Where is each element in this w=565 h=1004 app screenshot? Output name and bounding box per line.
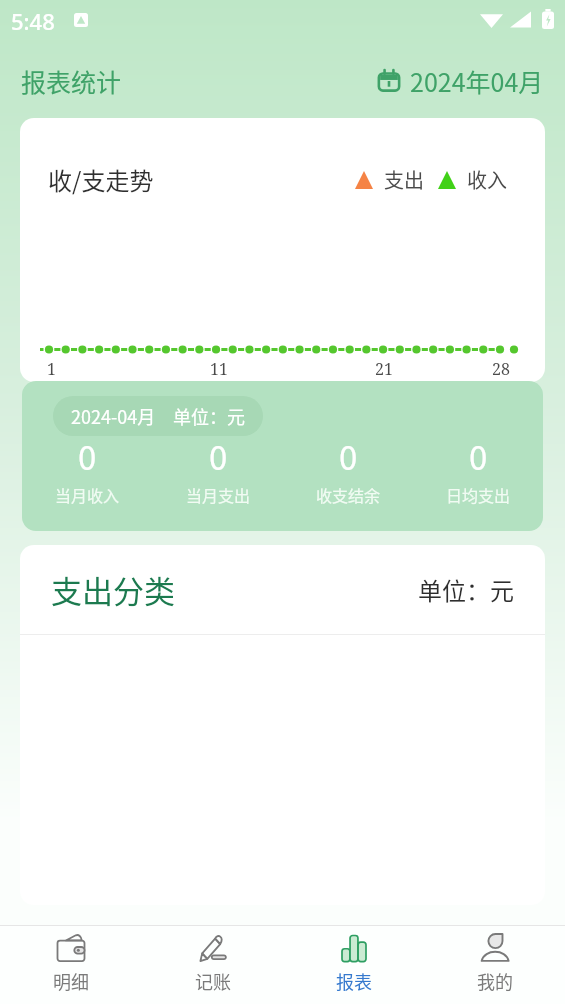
- button[interactable]: Select month: [376, 63, 544, 99]
- staticText: 单位：元: [418, 572, 514, 607]
- staticText: 明细: [53, 968, 89, 994]
- button[interactable]: 报表: [283, 926, 424, 999]
- staticText: 当月收入: [55, 483, 120, 506]
- staticText: 28: [492, 358, 510, 380]
- button[interactable]: 明细: [0, 926, 142, 999]
- staticText: 我的: [477, 968, 513, 994]
- staticText: 0: [339, 432, 358, 480]
- staticText: 0: [469, 432, 488, 480]
- staticText: 日均支出: [446, 483, 511, 506]
- staticText: 收/支走势: [48, 162, 154, 197]
- staticText: 记账: [195, 968, 231, 994]
- staticText: 11: [210, 358, 228, 380]
- other: Select month: [376, 68, 402, 94]
- staticText: 报表: [336, 968, 372, 994]
- staticText: 21: [375, 358, 393, 380]
- staticText: 支出: [384, 165, 424, 194]
- staticText: 2024-04月: [71, 403, 156, 429]
- staticText: 0: [209, 432, 228, 480]
- staticText: 收入: [467, 165, 507, 194]
- button[interactable]: 我的: [424, 926, 565, 999]
- staticText: 当月支出: [186, 483, 251, 506]
- staticText: 收支结余: [316, 483, 381, 506]
- staticText: 单位：元: [173, 403, 245, 429]
- staticText: 5:48: [11, 6, 55, 36]
- staticText: 支出分类: [51, 567, 175, 612]
- button[interactable]: 记账: [142, 926, 283, 999]
- staticText: 报表统计: [21, 63, 122, 99]
- staticText: 0: [78, 432, 97, 480]
- staticText: 1: [47, 358, 56, 380]
- staticText: 2024年04月: [410, 63, 544, 99]
